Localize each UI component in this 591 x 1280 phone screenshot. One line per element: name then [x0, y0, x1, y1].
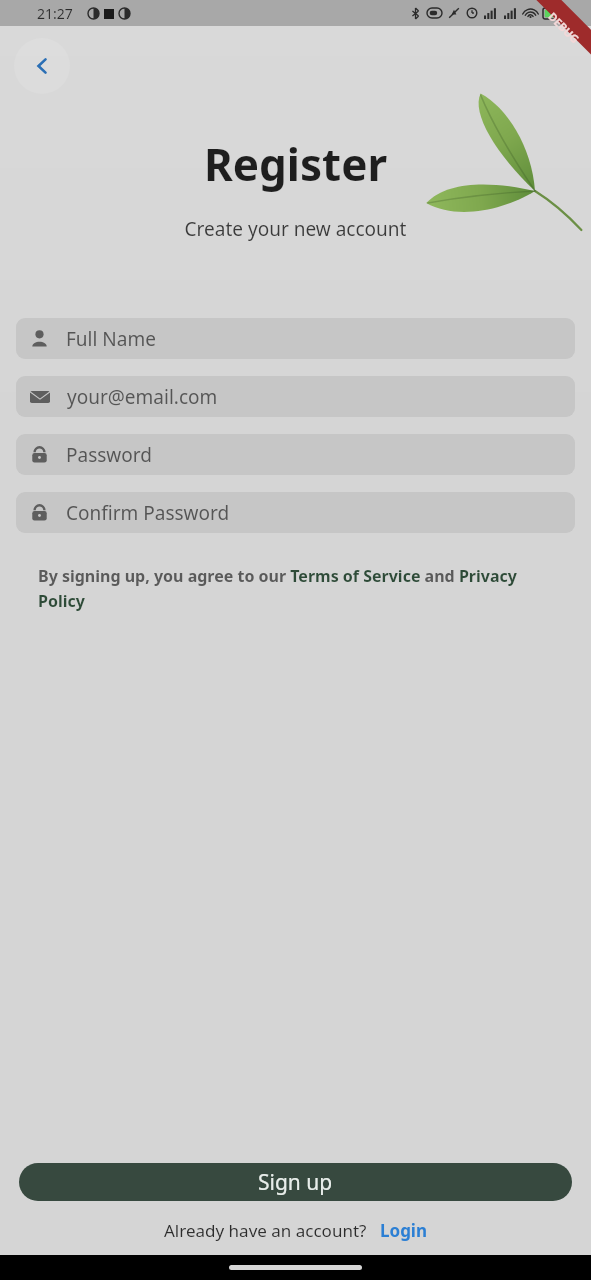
button[interactable]: By signing up, you agree to our Terms of…	[38, 565, 553, 611]
staticText: Full Name	[66, 326, 156, 352]
staticText: Confirm Password	[66, 500, 230, 526]
button[interactable]: Confirm Password	[16, 492, 575, 533]
staticText: your@email.com	[67, 384, 218, 410]
button[interactable]: your@email.com	[16, 376, 575, 417]
staticText: Password	[66, 442, 152, 468]
staticText: Sign up	[258, 1168, 333, 1197]
button[interactable]: Sign up	[19, 1163, 572, 1201]
staticText: 21:27	[37, 4, 73, 23]
staticText: Register	[0, 134, 591, 194]
button[interactable]: Password	[16, 434, 575, 475]
staticText: Already have an account?	[164, 1219, 367, 1242]
staticText: Login	[380, 1219, 428, 1242]
button[interactable]: Full Name	[16, 318, 575, 359]
staticText: DEBUG	[545, 9, 583, 46]
button[interactable]: Back	[14, 38, 70, 94]
staticText: By signing up, you agree to our Terms of…	[38, 565, 553, 611]
staticText: Create your new account	[0, 216, 591, 242]
button[interactable]: Login	[380, 1219, 428, 1242]
